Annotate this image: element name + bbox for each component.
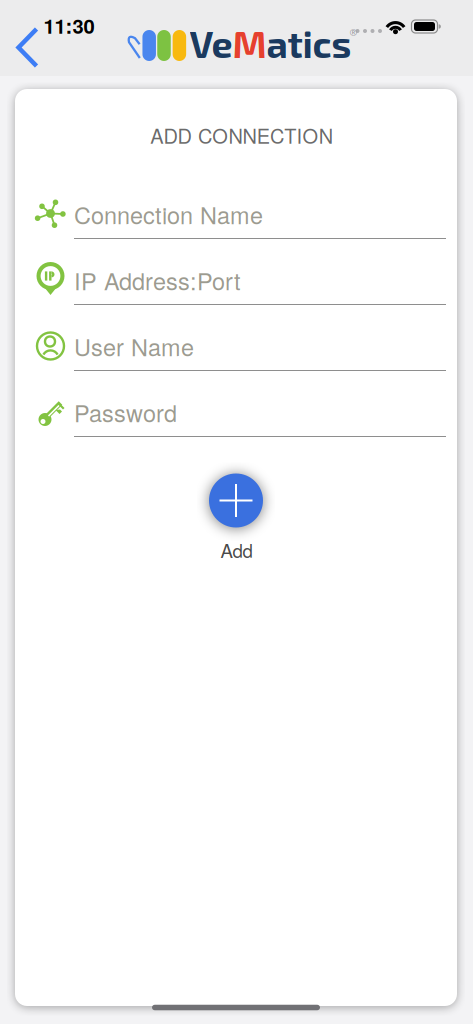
staticText: User Name [74,329,194,363]
staticText: 11:30 [43,11,94,40]
button[interactable]: Back [14,26,40,69]
staticText: ® [349,26,357,39]
button[interactable]: Add [209,473,263,527]
textField[interactable]: Connection Name [74,197,446,231]
staticText: M [232,21,266,66]
staticText: atics [266,21,351,66]
staticText: IP Address:Port [74,263,241,297]
staticText: Password [74,395,177,429]
staticText: ADD CONNECTION [150,121,333,149]
staticText: Connection Name [74,197,263,231]
textField[interactable]: User Name [74,329,446,363]
secureTextField[interactable]: Password [74,395,446,429]
textField[interactable]: IP Address:Port [74,263,446,297]
staticText: Ve [189,21,232,66]
staticText: Add [220,537,252,563]
